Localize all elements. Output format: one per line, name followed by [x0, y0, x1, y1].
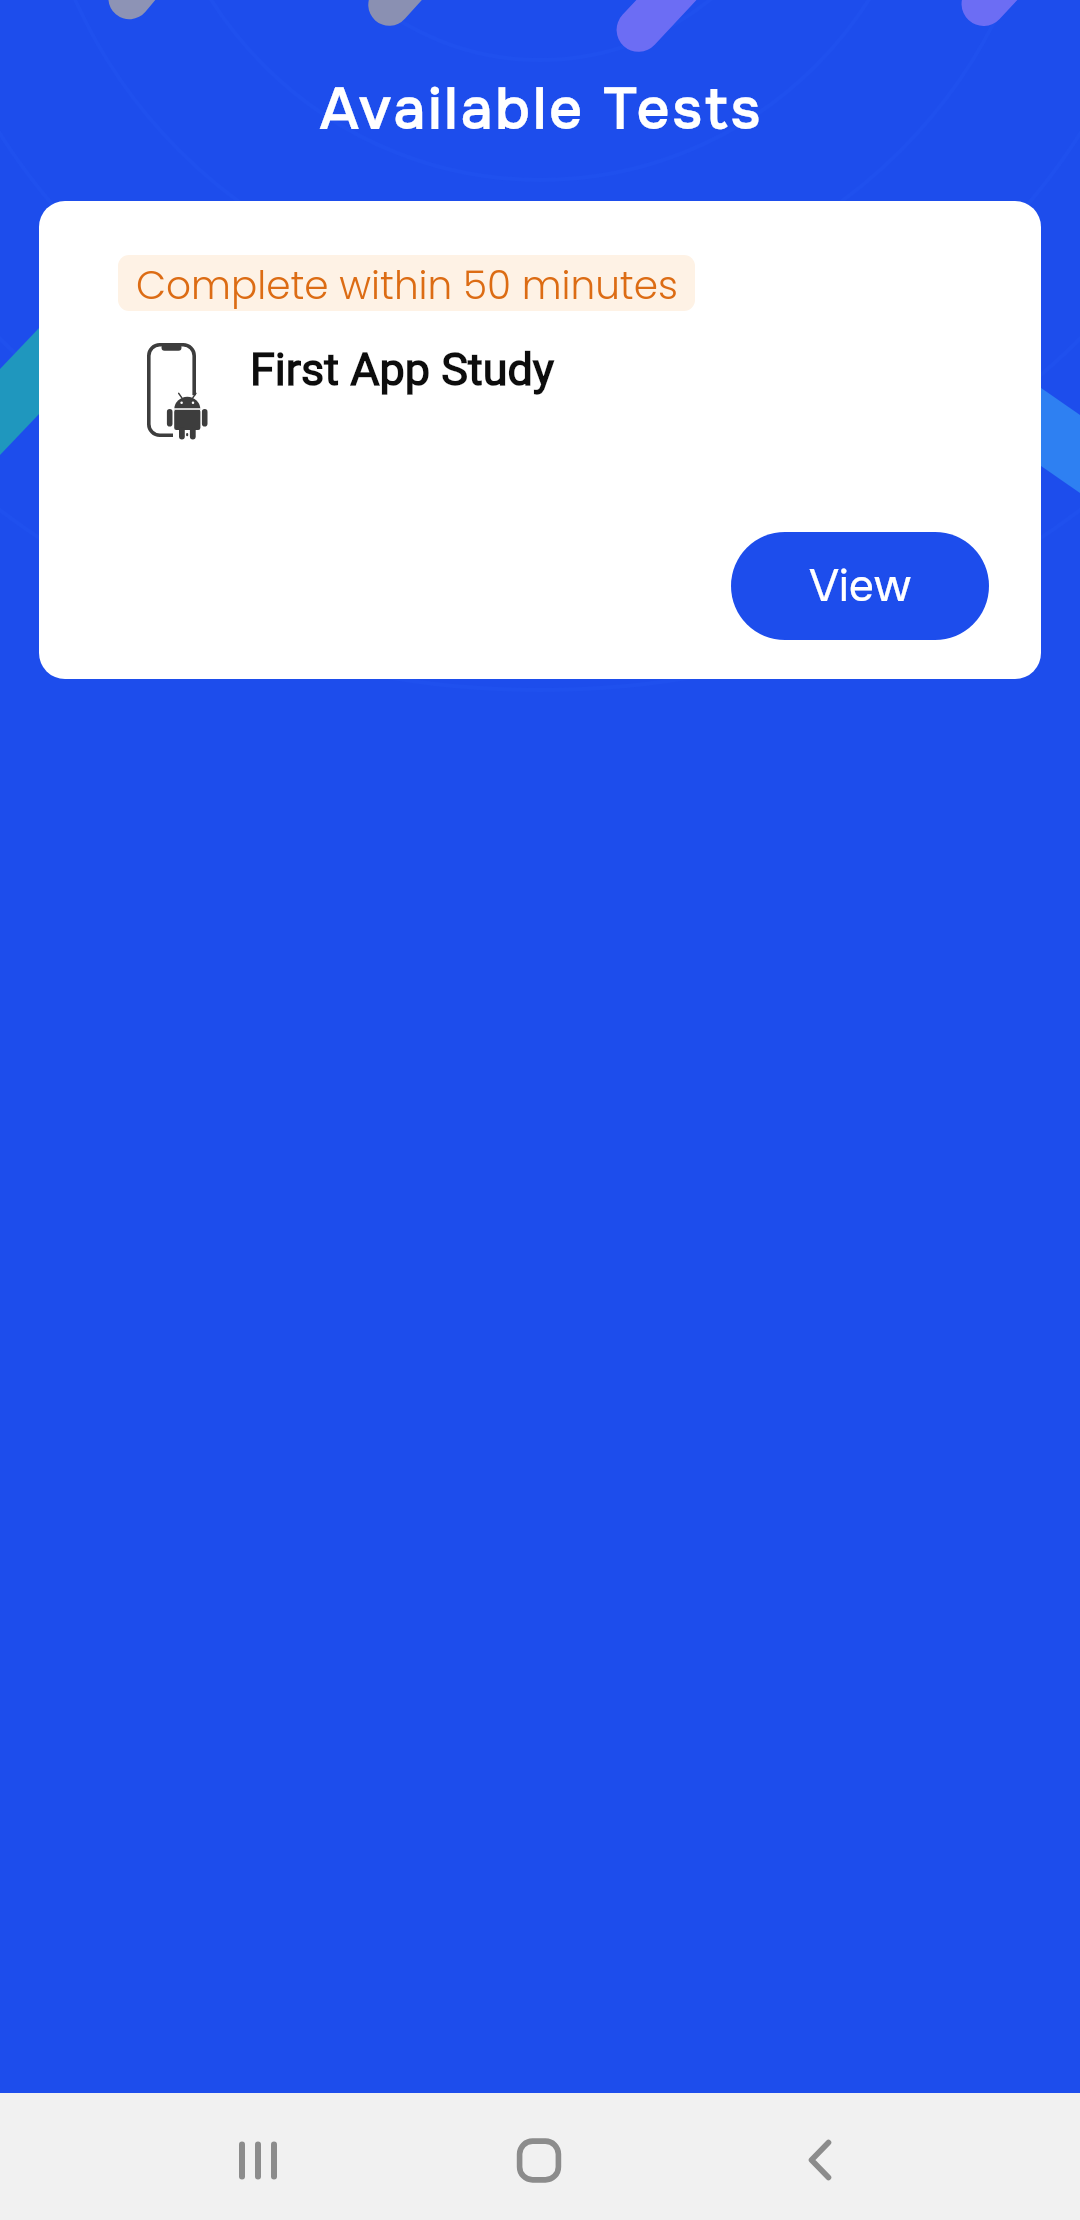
button[interactable]: Complete within 50 minutes	[39, 201, 1041, 679]
staticText: First App Study	[250, 343, 555, 396]
button[interactable]: View	[731, 532, 989, 640]
button[interactable]: Back	[730, 2093, 910, 2220]
button[interactable]: Home	[449, 2093, 629, 2220]
staticText: Available Tests	[2, 74, 1080, 145]
button[interactable]: Recent apps	[168, 2093, 348, 2220]
staticText: Complete within 50 minutes	[136, 258, 678, 311]
staticText: View	[809, 558, 911, 614]
